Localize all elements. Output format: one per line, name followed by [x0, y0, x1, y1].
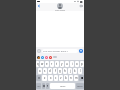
button[interactable]: Shift: [36, 75, 41, 81]
staticText: k: [74, 69, 76, 73]
staticText: q: [37, 62, 39, 66]
staticText: g: [59, 69, 61, 73]
button[interactable]: Backspace: [79, 75, 84, 81]
staticText: z: [44, 76, 46, 80]
button[interactable]: Photos: [41, 56, 44, 59]
button[interactable]: Memoji: [45, 56, 48, 59]
button[interactable]: j: [68, 68, 72, 74]
button[interactable]: a: [38, 68, 42, 74]
button[interactable]: return: [76, 83, 84, 89]
button[interactable]: Music: [49, 56, 52, 59]
button[interactable]: Dictate: [46, 83, 49, 89]
staticText: b: [65, 76, 67, 80]
button[interactable]: k: [73, 68, 77, 74]
button[interactable]: f: [53, 68, 57, 74]
staticText: w: [41, 62, 44, 66]
button[interactable]: q: [36, 61, 39, 67]
button[interactable]: Back: [37, 4, 41, 8]
button[interactable]: c: [54, 75, 58, 81]
staticText: 123: [37, 85, 41, 88]
staticText: d: [49, 69, 51, 73]
button[interactable]: v: [59, 75, 63, 81]
button[interactable]: h: [63, 68, 67, 74]
staticText: x: [50, 76, 52, 80]
button[interactable]: l: [78, 68, 82, 74]
staticText: f: [55, 69, 56, 73]
staticText: v: [60, 76, 62, 80]
button[interactable]: Emoji: [42, 83, 45, 89]
button[interactable]: App Store: [37, 56, 40, 59]
button[interactable]: y: [60, 61, 64, 67]
button[interactable]: u: [65, 61, 69, 67]
staticText: y: [61, 62, 63, 66]
button[interactable]: r: [50, 61, 54, 67]
staticText: Tom Cook: [55, 9, 65, 11]
staticText: n: [70, 76, 72, 80]
staticText: space: [60, 85, 66, 88]
button[interactable]: m: [74, 75, 78, 81]
staticText: m: [75, 76, 78, 80]
button[interactable]: Tom Cook: [55, 3, 65, 11]
button[interactable]: space: [50, 83, 75, 89]
button[interactable]: More apps: [53, 56, 57, 58]
button[interactable]: d: [48, 68, 52, 74]
button[interactable]: b: [64, 75, 68, 81]
staticText: a: [39, 69, 41, 73]
staticText: h: [64, 69, 66, 73]
button[interactable]: Video call: [79, 4, 83, 8]
staticText: s: [44, 69, 46, 73]
button[interactable]: o: [75, 61, 79, 67]
button[interactable]: t: [55, 61, 59, 67]
staticText: return: [77, 85, 83, 88]
button[interactable]: Add attachment: [37, 49, 41, 53]
button[interactable]: Send: [79, 49, 83, 53]
staticText: e: [46, 62, 48, 66]
button[interactable]: s: [43, 68, 47, 74]
staticText: p: [81, 62, 83, 66]
staticText: This guy doesnt drink c: [43, 50, 68, 53]
button[interactable]: e: [45, 61, 49, 67]
button[interactable]: i: [70, 61, 74, 67]
button[interactable]: 123: [36, 83, 41, 89]
button[interactable]: p: [80, 61, 84, 67]
button[interactable]: n: [69, 75, 73, 81]
button[interactable]: w: [40, 61, 44, 67]
button[interactable]: x: [48, 75, 53, 81]
staticText: t: [56, 62, 58, 66]
staticText: j: [70, 69, 71, 73]
staticText: u: [66, 62, 68, 66]
button[interactable]: g: [58, 68, 62, 74]
staticText: r: [51, 62, 53, 66]
button[interactable]: This guy doesnt drink c: [42, 49, 78, 53]
button[interactable]: z: [42, 75, 47, 81]
staticText: c: [55, 76, 57, 80]
staticText: l: [80, 69, 81, 73]
staticText: i: [72, 62, 73, 66]
staticText: o: [76, 62, 78, 66]
